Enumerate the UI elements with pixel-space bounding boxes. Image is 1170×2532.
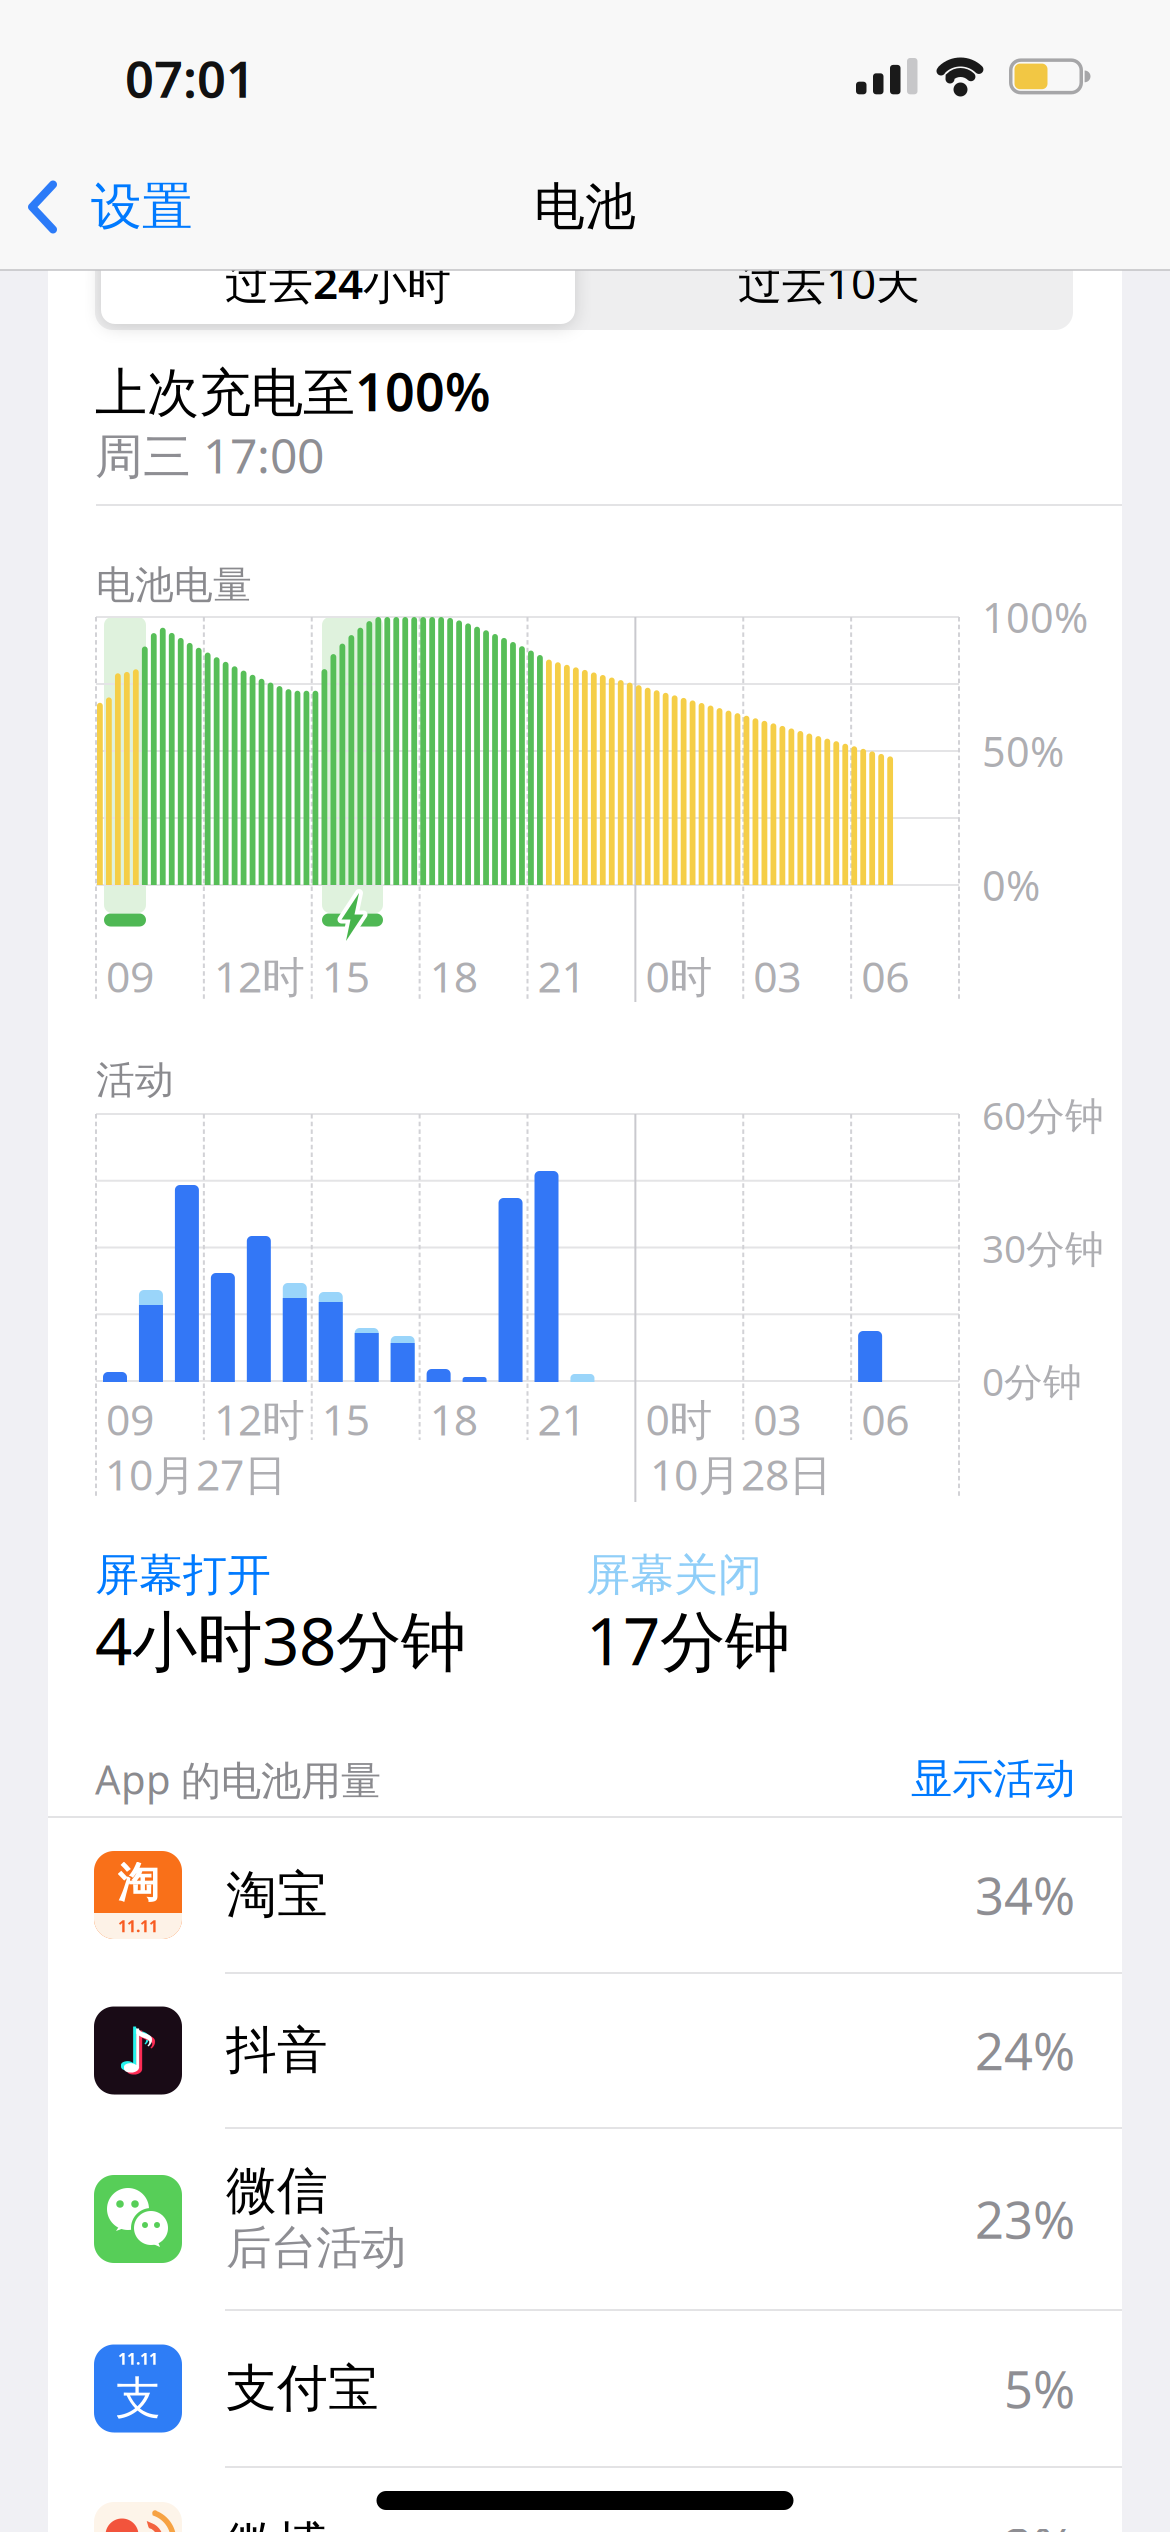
staticText: 06 — [861, 1391, 909, 1447]
staticText: 活动 — [96, 1056, 174, 1104]
staticText: 34% — [975, 1861, 1075, 1929]
staticText: 过去10天 — [738, 253, 920, 311]
button[interactable]: 设置 — [28, 162, 258, 252]
staticText: 17分钟 — [586, 1597, 790, 1683]
staticText: App 的电池用量 — [95, 1752, 381, 1806]
staticText: ♪ — [119, 2017, 157, 2086]
staticText: 15 — [322, 948, 370, 1004]
staticText: 微信 — [226, 2160, 328, 2222]
staticText: 21 — [537, 948, 585, 1004]
staticText: 03 — [753, 948, 801, 1004]
staticText: 10月27日 — [105, 1446, 287, 1502]
staticText: 周三 17:00 — [95, 423, 324, 487]
staticText: 15 — [322, 1391, 370, 1447]
staticText: 2% — [1004, 2512, 1075, 2532]
staticText: 屏幕打开 — [95, 1548, 271, 1602]
button[interactable]: 显示活动 — [815, 1744, 1075, 1814]
staticText: 5% — [1004, 2355, 1075, 2422]
staticText: 30分钟 — [982, 1222, 1104, 1274]
staticText: 4小时38分钟 — [95, 1597, 466, 1683]
staticText: 12时 — [214, 948, 305, 1004]
staticText: 18 — [430, 948, 478, 1004]
staticText: 0时 — [645, 948, 712, 1004]
staticText: 电池电量 — [96, 561, 252, 609]
staticText: ♪ — [122, 2019, 160, 2088]
staticText: 09 — [106, 948, 154, 1004]
staticText: 07:01 — [125, 44, 255, 112]
staticText: ♪ — [116, 2015, 154, 2084]
staticText: 上次充电至100% — [95, 356, 491, 426]
staticText: 屏幕关闭 — [586, 1548, 762, 1602]
staticText: 60分钟 — [982, 1089, 1104, 1141]
staticText: 09 — [106, 1391, 154, 1447]
staticText: 支付宝 — [226, 2357, 379, 2420]
button[interactable]: 微博 — [48, 2467, 1122, 2532]
staticText: 23% — [975, 2185, 1075, 2253]
staticText: 100% — [982, 590, 1088, 644]
staticText: 0分钟 — [982, 1355, 1082, 1407]
staticText: 过去24小时 — [225, 253, 451, 311]
button[interactable]: 微信 — [48, 2128, 1122, 2310]
staticText: 支 — [115, 2371, 160, 2426]
staticText: 06 — [861, 948, 909, 1004]
staticText: 电池 — [534, 176, 636, 238]
button[interactable]: 过去10天 — [589, 240, 1069, 324]
staticText: 12时 — [214, 1391, 305, 1447]
staticText: 24% — [975, 2017, 1075, 2084]
staticText: 设置 — [91, 176, 193, 238]
staticText: 淘宝 — [226, 1864, 328, 1926]
staticText: 0% — [982, 858, 1040, 912]
staticText: 11.11 — [118, 1915, 158, 1937]
staticText: 抖音 — [226, 2019, 328, 2082]
staticText: 50% — [982, 724, 1064, 778]
staticText: 18 — [430, 1391, 478, 1447]
staticText: 11.11 — [118, 2348, 158, 2369]
staticText: 后台活动 — [226, 2220, 406, 2276]
staticText: 21 — [537, 1391, 585, 1447]
button[interactable]: 淘 — [48, 1817, 1122, 1973]
staticText: 10月28日 — [650, 1446, 832, 1502]
staticText: 显示活动 — [911, 1754, 1075, 1804]
staticText: 0时 — [645, 1391, 712, 1447]
staticText: 淘 — [117, 1858, 158, 1908]
staticText: 微博 — [226, 2515, 328, 2532]
button[interactable]: 过去24小时 — [101, 240, 575, 324]
button[interactable]: 11.11 — [48, 2310, 1122, 2467]
button[interactable]: ♪ — [48, 1973, 1122, 2128]
staticText: 03 — [753, 1391, 801, 1447]
